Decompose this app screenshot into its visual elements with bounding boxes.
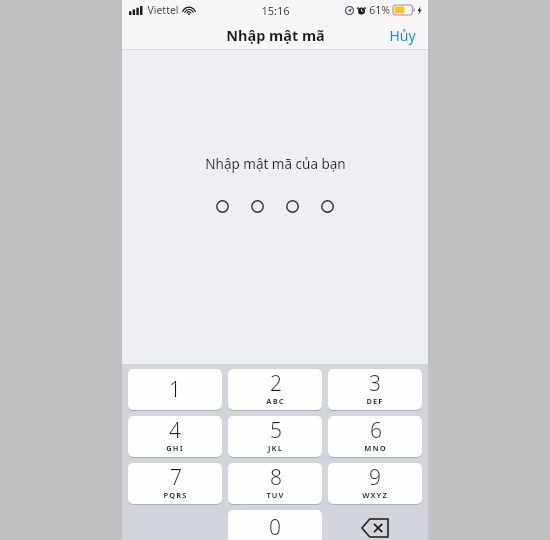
button[interactable]: 8 xyxy=(228,463,322,504)
button[interactable]: 1 xyxy=(128,369,222,410)
button[interactable]: 3 xyxy=(328,369,422,410)
staticText: 5 xyxy=(270,416,282,445)
staticText: 9 xyxy=(369,463,381,492)
staticText: ABC xyxy=(266,396,285,406)
staticText: 3 xyxy=(369,369,381,398)
button[interactable]: 2 xyxy=(228,369,322,410)
staticText: 15:16 xyxy=(261,3,290,18)
staticText: Nhập mật mã xyxy=(226,25,325,45)
staticText: 7 xyxy=(170,463,182,492)
staticText: 0 xyxy=(269,513,281,540)
staticText: Viettel xyxy=(147,3,179,17)
button[interactable]: 0 xyxy=(228,510,322,540)
button[interactable]: Xóa xyxy=(328,510,422,540)
staticText: 2 xyxy=(270,369,282,398)
staticText: TUV xyxy=(266,490,285,500)
staticText: 8 xyxy=(270,463,282,492)
button[interactable]: 7 xyxy=(128,463,222,504)
staticText: JKL xyxy=(268,443,283,453)
staticText: 4 xyxy=(169,416,181,445)
staticText: 1 xyxy=(169,375,181,404)
staticText: Hủy xyxy=(389,26,416,45)
button[interactable]: Hủy xyxy=(377,22,428,49)
button[interactable]: 9 xyxy=(328,463,422,504)
staticText: PQRS xyxy=(163,490,188,500)
button[interactable]: 4 xyxy=(128,416,222,457)
staticText: GHI xyxy=(166,443,184,453)
staticText: DEF xyxy=(366,396,384,406)
button[interactable]: 6 xyxy=(328,416,422,457)
staticText: 6 xyxy=(370,416,382,445)
button[interactable]: 5 xyxy=(228,416,322,457)
staticText: 61% xyxy=(369,3,390,17)
staticText: WXYZ xyxy=(362,490,388,500)
staticText: Nhập mật mã của bạn xyxy=(205,155,346,173)
staticText: MNO xyxy=(364,443,387,453)
